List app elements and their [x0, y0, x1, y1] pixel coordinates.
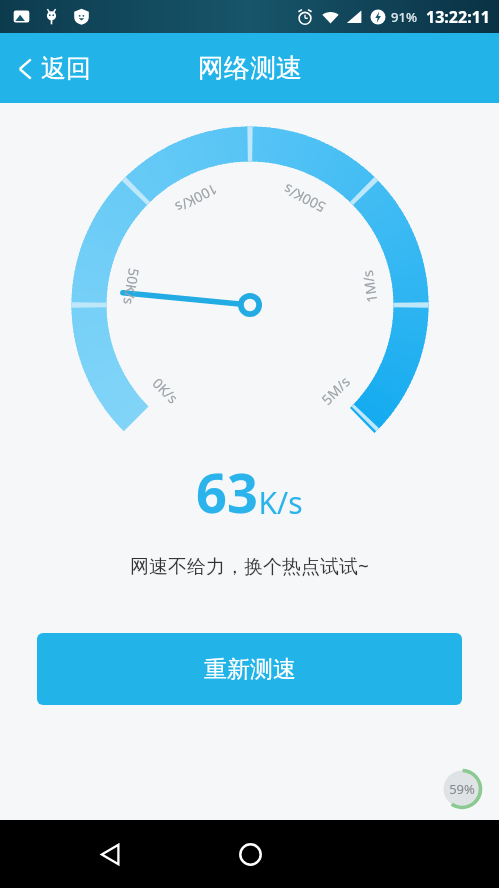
staticText: 网络测速 — [198, 52, 302, 85]
staticText: 网速不给力，换个热点试试~ — [130, 553, 369, 579]
staticText: K/s — [258, 482, 303, 523]
staticText: 重新测速 — [204, 655, 296, 684]
button[interactable]: Back — [88, 831, 134, 877]
button[interactable]: Home — [227, 831, 273, 877]
staticText: 91% — [391, 8, 417, 26]
button[interactable]: 返回 — [14, 53, 91, 84]
staticText: 50K/s — [119, 267, 144, 306]
staticText: 13:22:11 — [426, 6, 490, 28]
staticText: 63 — [196, 455, 258, 529]
staticText: 0K/s — [148, 373, 182, 407]
button[interactable]: Download progress 59 percent — [441, 768, 483, 810]
staticText: 59% — [449, 780, 475, 798]
staticText: 500K/s — [280, 180, 329, 217]
button[interactable]: 重新测速 — [37, 633, 462, 705]
staticText: 100K/s — [172, 180, 221, 217]
staticText: 返回 — [41, 53, 91, 84]
staticText: 1M/s — [357, 269, 381, 304]
staticText: 5M/s — [317, 372, 354, 409]
